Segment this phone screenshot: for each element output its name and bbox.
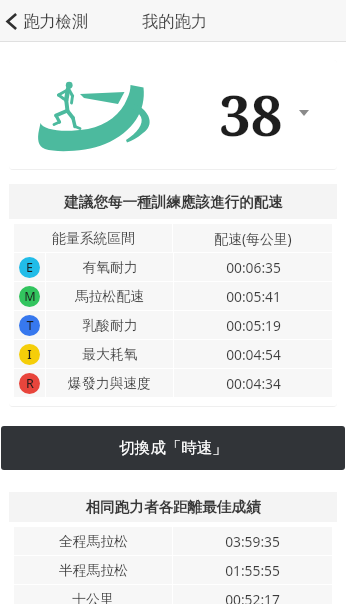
staticText: 配速(每公里) <box>214 229 292 248</box>
staticText: 十公里 <box>72 591 114 604</box>
staticText: 建議您每一種訓練應該進行的配速 <box>64 193 283 211</box>
staticText: I <box>27 346 32 363</box>
staticText: 乳酸耐力 <box>82 317 138 334</box>
button[interactable]: R <box>14 369 332 397</box>
staticText: 跑力檢測 <box>23 11 88 31</box>
staticText: 00:04:54 <box>226 345 281 364</box>
staticText: 有氧耐力 <box>82 259 138 276</box>
staticText: 切換成「時速」 <box>119 438 228 458</box>
staticText: 00:05:41 <box>226 287 281 306</box>
staticText: 相同跑力者各距離最佳成績 <box>85 498 261 516</box>
staticText: T <box>26 317 34 334</box>
staticText: 38 <box>219 76 283 152</box>
staticText: 03:59:35 <box>225 532 280 551</box>
button[interactable]: E <box>14 253 332 281</box>
button[interactable]: 全程馬拉松 <box>14 527 332 555</box>
staticText: M <box>24 288 36 305</box>
staticText: E <box>26 259 33 276</box>
staticText: R <box>26 375 34 392</box>
staticText: 能量系統區間 <box>52 230 135 247</box>
staticText: 00:52:17 <box>225 590 280 604</box>
button[interactable]: 切換成「時速」 <box>1 426 345 470</box>
staticText: 我的跑力 <box>142 11 207 31</box>
button[interactable]: T <box>14 311 332 339</box>
staticText: 半程馬拉松 <box>59 562 128 579</box>
staticText: 00:05:19 <box>226 316 281 335</box>
button[interactable]: M <box>14 282 332 310</box>
staticText: 全程馬拉松 <box>59 533 128 550</box>
staticText: 最大耗氧 <box>82 346 138 363</box>
button[interactable]: 十公里 <box>14 585 332 604</box>
staticText: 00:04:34 <box>226 374 281 393</box>
button[interactable]: 跑力檢測 <box>0 6 96 36</box>
button[interactable]: 展開跑力選單 <box>296 105 312 121</box>
button[interactable]: 半程馬拉松 <box>14 556 332 584</box>
staticText: 爆發力與速度 <box>68 375 151 392</box>
staticText: 01:55:55 <box>225 561 280 580</box>
button[interactable]: I <box>14 340 332 368</box>
staticText: 馬拉松配速 <box>75 288 144 305</box>
staticText: 00:06:35 <box>226 258 281 277</box>
